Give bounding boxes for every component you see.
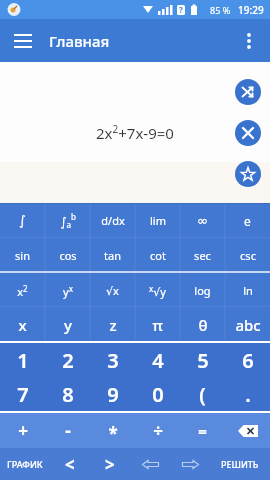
staticText: x√y xyxy=(149,283,166,299)
button[interactable]: ( xyxy=(180,377,225,411)
staticText: θ xyxy=(198,315,208,335)
button[interactable]: x xyxy=(0,308,45,341)
button[interactable]: log xyxy=(180,273,225,308)
button[interactable]: > xyxy=(90,448,130,480)
staticText: ∞ xyxy=(197,213,208,228)
staticText: cos xyxy=(59,248,77,263)
staticText: ( xyxy=(199,381,206,408)
button[interactable]: - xyxy=(45,413,90,448)
button[interactable]: . xyxy=(225,377,270,411)
button[interactable]: cot xyxy=(135,238,180,273)
staticText: abc xyxy=(235,315,261,335)
staticText: РЕШИТЬ xyxy=(221,458,259,470)
button[interactable]: 5 xyxy=(180,343,225,377)
staticText: x xyxy=(18,315,27,335)
button[interactable]: РЕШИТЬ xyxy=(210,448,270,480)
staticText: 19:29 xyxy=(238,3,264,17)
button[interactable]: lim xyxy=(135,203,180,238)
staticText: x2 xyxy=(17,283,28,299)
button[interactable] xyxy=(235,79,261,105)
button[interactable]: yx xyxy=(45,273,90,308)
button[interactable]: 0 xyxy=(135,377,180,411)
staticText: 3 xyxy=(107,347,119,374)
staticText: ∫ xyxy=(19,213,26,228)
staticText: 4 xyxy=(152,347,164,374)
button[interactable]: 9 xyxy=(90,377,135,411)
button[interactable]: cos xyxy=(45,238,90,273)
staticText: 6 xyxy=(242,347,254,374)
staticText: ÷ xyxy=(153,419,163,442)
staticText: csc xyxy=(240,248,256,263)
staticText: sin xyxy=(15,248,30,263)
button[interactable]: d/dx xyxy=(90,203,135,238)
staticText: + xyxy=(18,419,28,442)
button[interactable]: csc xyxy=(225,238,270,273)
staticText: yx xyxy=(63,283,73,299)
staticText: - xyxy=(65,419,71,442)
staticText: 7 xyxy=(17,381,29,408)
staticText: 85 % xyxy=(210,4,231,16)
button[interactable]: tan xyxy=(90,238,135,273)
staticText: e xyxy=(244,213,251,229)
staticText: 5 xyxy=(197,347,209,374)
staticText: d/dx xyxy=(101,213,125,228)
button[interactable]: 3 xyxy=(90,343,135,377)
button[interactable]: √x xyxy=(90,273,135,308)
staticText: ln xyxy=(243,283,253,298)
button[interactable] xyxy=(225,413,270,448)
staticText: 2x2+7x-9=0 xyxy=(96,122,174,143)
button[interactable]: x2 xyxy=(0,273,45,308)
button[interactable] xyxy=(238,30,260,52)
button[interactable]: sin xyxy=(0,238,45,273)
button[interactable]: + xyxy=(0,413,45,448)
button[interactable]: < xyxy=(50,448,90,480)
staticText: cot xyxy=(150,248,166,263)
button[interactable]: π xyxy=(135,308,180,341)
button[interactable]: sec xyxy=(180,238,225,273)
button[interactable]: ln xyxy=(225,273,270,308)
button[interactable]: ГРАФИК xyxy=(0,448,50,480)
button[interactable]: 8 xyxy=(45,377,90,411)
staticText: ∫ab xyxy=(60,211,76,230)
staticText: * xyxy=(108,422,118,445)
button[interactable]: θ xyxy=(180,308,225,341)
button[interactable]: e xyxy=(225,203,270,238)
staticText: . xyxy=(245,381,251,408)
staticText: 1 xyxy=(17,347,29,374)
button[interactable]: abc xyxy=(225,308,270,341)
staticText: log xyxy=(194,283,211,298)
staticText: = xyxy=(198,421,207,441)
button[interactable]: 7 xyxy=(0,377,45,411)
staticText: z xyxy=(109,315,117,335)
staticText: Главная xyxy=(49,31,110,51)
staticText: lim xyxy=(150,213,166,228)
button[interactable]: 2 xyxy=(45,343,90,377)
staticText: 9 xyxy=(107,381,119,408)
button[interactable]: = xyxy=(180,413,225,448)
button[interactable] xyxy=(8,26,38,56)
button[interactable]: ÷ xyxy=(135,413,180,448)
button[interactable]: 4 xyxy=(135,343,180,377)
staticText: 2 xyxy=(62,347,74,374)
button[interactable] xyxy=(235,161,261,187)
staticText: sec xyxy=(194,248,211,263)
staticText: > xyxy=(105,453,115,476)
button[interactable]: ∞ xyxy=(180,203,225,238)
button[interactable]: y xyxy=(45,308,90,341)
button[interactable] xyxy=(170,448,210,480)
staticText: ГРАФИК xyxy=(7,458,43,470)
button[interactable] xyxy=(235,120,261,146)
button[interactable]: z xyxy=(90,308,135,341)
button[interactable]: ∫ xyxy=(0,203,45,238)
button[interactable]: 1 xyxy=(0,343,45,377)
staticText: π xyxy=(152,315,163,335)
staticText: y xyxy=(64,315,72,335)
staticText: tan xyxy=(104,248,121,263)
staticText: ? xyxy=(179,4,183,15)
staticText: 0 xyxy=(152,381,164,408)
button[interactable] xyxy=(130,448,170,480)
button[interactable]: * xyxy=(90,413,135,448)
button[interactable]: 6 xyxy=(225,343,270,377)
button[interactable]: x√y xyxy=(135,273,180,308)
button[interactable]: ∫ab xyxy=(45,203,90,238)
